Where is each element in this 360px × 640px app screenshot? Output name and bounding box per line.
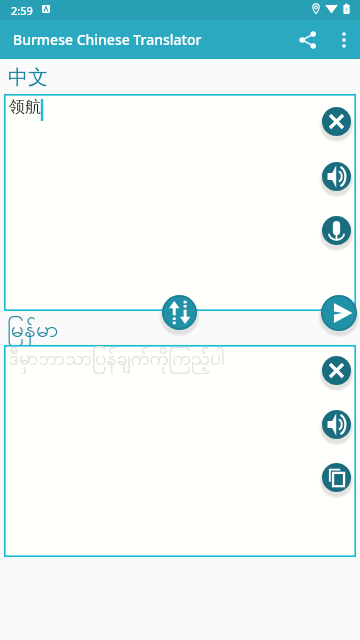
button[interactable]: မြန်မာ [7, 314, 59, 348]
button[interactable]: Translate [321, 295, 357, 331]
button[interactable]: ဒီမှာဘာသာပြန်ချက်ကိုကြည့်ပါ [4, 345, 356, 557]
button[interactable]: Swap languages [162, 295, 197, 330]
staticText: 中文 [8, 65, 48, 90]
staticText: မြန်မာ [7, 314, 59, 348]
staticText: ဒီမှာဘာသာပြန်ချက်ကိုကြည့်ပါ [9, 346, 225, 375]
button[interactable]: Clear text [322, 107, 351, 136]
button[interactable]: Voice input [322, 216, 351, 245]
button[interactable]: More options [326, 22, 360, 58]
button[interactable]: 中文 [8, 65, 48, 90]
button[interactable]: Clear translation [322, 356, 351, 385]
button[interactable]: 领航 [4, 94, 356, 311]
button[interactable]: Share [290, 22, 326, 58]
button[interactable]: Speak translation [322, 410, 351, 439]
button[interactable]: Speak text [322, 162, 351, 191]
staticText: 领航 [9, 97, 41, 117]
staticText: 2:59 [11, 3, 33, 18]
staticText: Burmese Chinese Translator [13, 30, 202, 49]
button[interactable]: Copy translation [322, 463, 351, 492]
